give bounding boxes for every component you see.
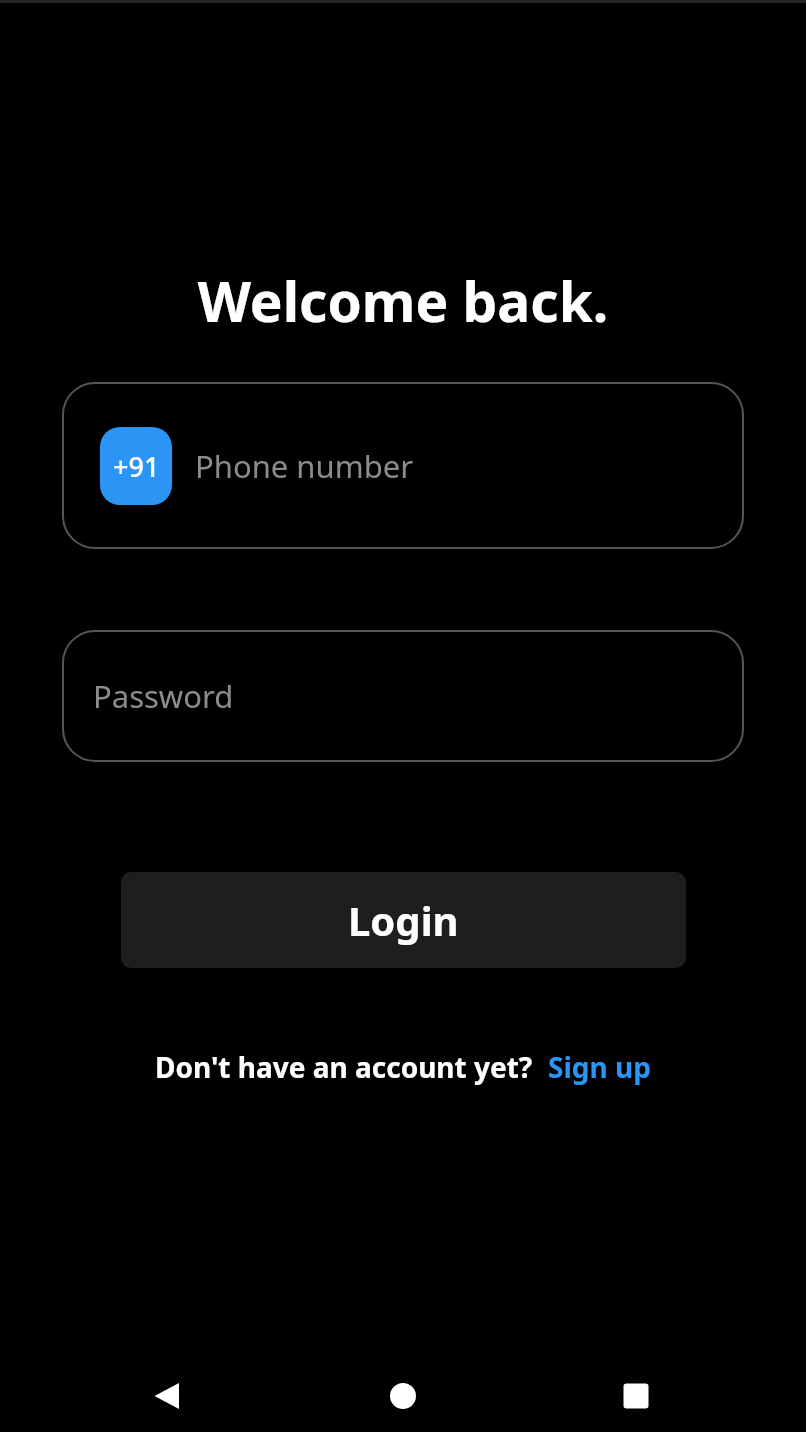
staticText: Sign up (548, 1048, 651, 1086)
button[interactable]: Recent apps (611, 1371, 661, 1421)
staticText: Password (93, 675, 234, 717)
button[interactable]: Sign up (548, 1048, 651, 1086)
button[interactable]: Password (62, 630, 744, 762)
staticText: +91 (113, 448, 160, 485)
button[interactable]: +91 (100, 427, 172, 505)
button[interactable]: Login (121, 872, 686, 968)
button[interactable]: +91 (62, 382, 744, 549)
button[interactable]: Back (145, 1371, 195, 1421)
staticText: Phone number (195, 445, 414, 487)
staticText: Welcome back. (0, 263, 806, 338)
button[interactable]: Home (378, 1371, 428, 1421)
staticText: Login (348, 893, 459, 947)
staticText: Don't have an account yet? (155, 1048, 533, 1086)
